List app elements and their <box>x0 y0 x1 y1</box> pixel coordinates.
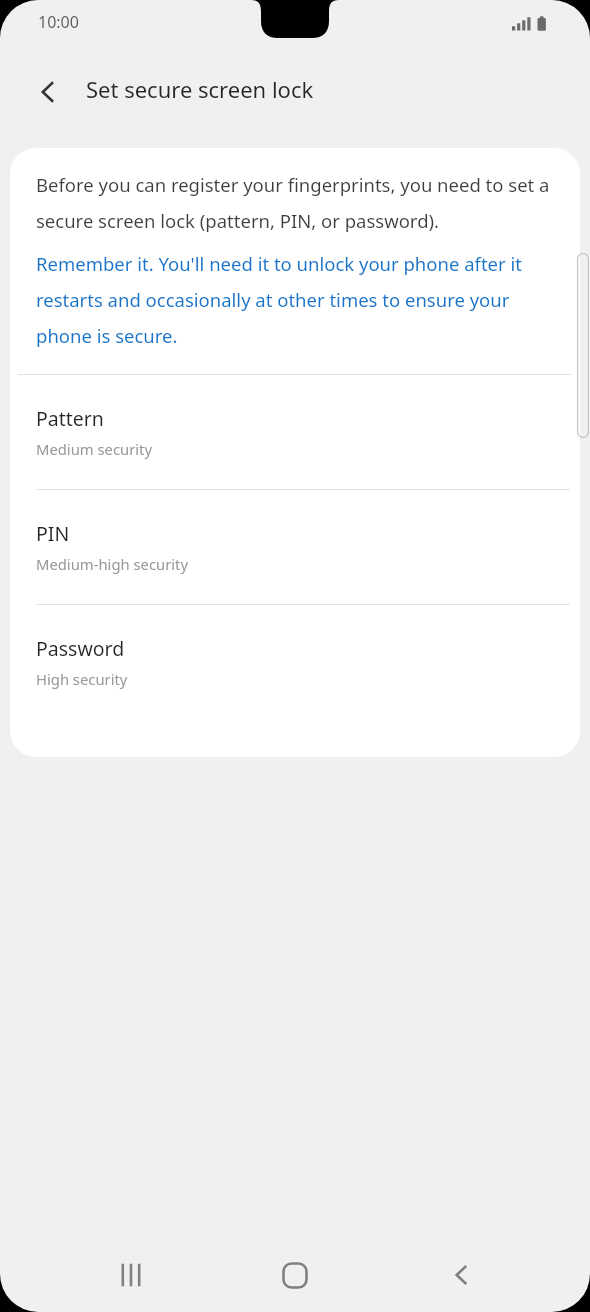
staticText: Remember it. You'll need it to unlock yo… <box>36 251 568 349</box>
staticText: High security <box>36 669 128 689</box>
button[interactable]: Home <box>261 1241 329 1309</box>
button[interactable]: Navigate up <box>20 64 76 120</box>
button[interactable]: Password <box>10 605 580 719</box>
button[interactable]: Recent apps <box>97 1241 165 1309</box>
staticText: Set secure screen lock <box>86 74 314 104</box>
button[interactable]: PIN <box>10 490 580 604</box>
staticText: Pattern <box>36 405 104 432</box>
staticText: Before you can register your fingerprint… <box>36 172 558 234</box>
staticText: Medium-high security <box>36 554 188 574</box>
staticText: Medium security <box>36 439 153 459</box>
staticText: PIN <box>36 520 70 547</box>
staticText: Password <box>36 635 125 662</box>
staticText: 10:00 <box>38 11 79 33</box>
button[interactable]: Back <box>427 1241 495 1309</box>
button[interactable]: Pattern <box>10 375 580 489</box>
